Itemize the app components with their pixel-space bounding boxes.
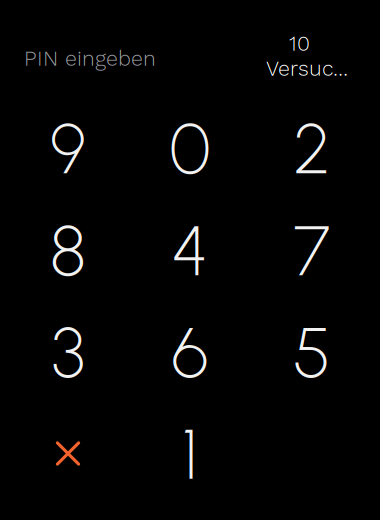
staticText: 6 (171, 311, 208, 394)
button[interactable]: 5 (251, 302, 373, 404)
staticText: 0 (169, 107, 210, 191)
staticText: PIN eingeben (24, 46, 156, 71)
staticText: 8 (50, 209, 86, 292)
button[interactable]: 0 (129, 98, 251, 200)
staticText: 5 (293, 311, 331, 394)
button[interactable]: 8 (7, 200, 129, 302)
button[interactable]: 4 (129, 200, 251, 302)
button[interactable]: 7 (251, 200, 373, 302)
button[interactable]: 9 (7, 98, 129, 200)
button[interactable]: 2 (251, 98, 373, 200)
button[interactable]: 3 (7, 302, 129, 404)
staticText: 1 (182, 413, 198, 496)
button[interactable]: Löschen (7, 404, 129, 505)
button[interactable]: 1 (129, 404, 251, 505)
staticText: 2 (293, 107, 330, 191)
staticText: 3 (51, 311, 84, 394)
staticText: Versuc… (266, 56, 348, 81)
staticText: 4 (171, 209, 208, 292)
staticText: 7 (293, 209, 330, 292)
staticText: 10 (289, 31, 310, 56)
button[interactable]: 6 (129, 302, 251, 404)
staticText: 9 (50, 107, 86, 191)
